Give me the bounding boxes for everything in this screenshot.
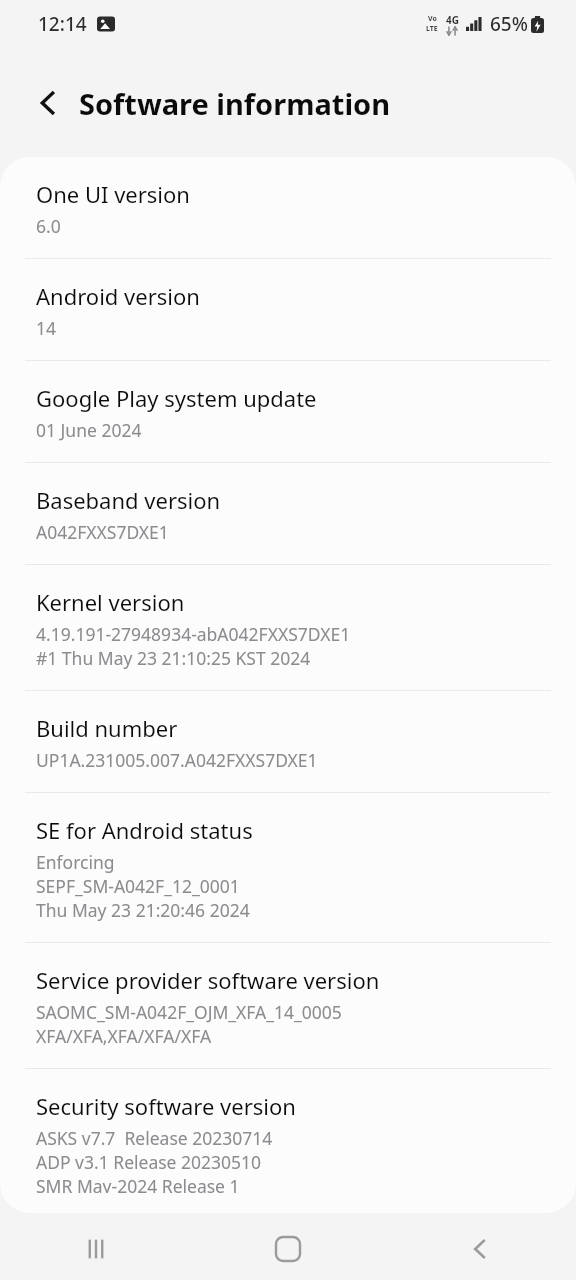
staticText: 14: [36, 316, 57, 340]
staticText: Security software version: [36, 1091, 296, 1121]
button[interactable]: One UI version: [0, 157, 576, 258]
button[interactable]: Kernel version: [0, 565, 576, 690]
button[interactable]: Service provider software version: [0, 943, 576, 1068]
button[interactable]: Recent apps: [0, 1218, 192, 1280]
staticText: SMR May-2024 Release 1: [36, 1174, 240, 1193]
button[interactable]: Security software version: [0, 1069, 576, 1213]
staticText: LTE: [426, 24, 438, 34]
staticText: #1 Thu May 23 21:10:25 KST 2024: [36, 646, 311, 670]
staticText: Google Play system update: [36, 383, 317, 413]
staticText: XFA/XFA,XFA/XFA/XFA: [36, 1024, 212, 1048]
staticText: SE for Android status: [36, 815, 253, 845]
staticText: 01 June 2024: [36, 418, 142, 442]
button[interactable]: Back: [384, 1218, 576, 1280]
button[interactable]: SE for Android status: [0, 793, 576, 942]
staticText: Android version: [36, 281, 200, 311]
staticText: 65%: [490, 11, 528, 37]
staticText: SEPF_SM-A042F_12_0001: [36, 874, 240, 898]
staticText: ADP v3.1 Release 20230510: [36, 1150, 262, 1174]
staticText: 6.0: [36, 214, 61, 238]
staticText: One UI version: [36, 179, 190, 209]
staticText: Vo: [428, 14, 437, 24]
staticText: SAOMC_SM-A042F_OJM_XFA_14_0005: [36, 1000, 342, 1024]
staticText: A042FXXS7DXE1: [36, 520, 169, 544]
button[interactable]: Build number: [0, 691, 576, 792]
staticText: Baseband version: [36, 485, 221, 515]
button[interactable]: Home: [192, 1218, 384, 1280]
staticText: 4G: [446, 13, 459, 27]
staticText: UP1A.231005.007.A042FXXS7DXE1: [36, 748, 318, 772]
staticText: Software information: [79, 84, 391, 123]
staticText: Kernel version: [36, 587, 185, 617]
staticText: Enforcing: [36, 850, 115, 874]
staticText: Service provider software version: [36, 965, 380, 995]
button[interactable]: Back: [20, 75, 76, 131]
staticText: ASKS v7.7 Release 20230714: [36, 1126, 273, 1150]
button[interactable]: Google Play system update: [0, 361, 576, 462]
button[interactable]: Android version: [0, 259, 576, 360]
staticText: 12:14: [38, 11, 87, 37]
button[interactable]: Baseband version: [0, 463, 576, 564]
staticText: Thu May 23 21:20:46 2024: [36, 898, 250, 922]
staticText: 4.19.191-27948934-abA042FXXS7DXE1: [36, 622, 351, 646]
staticText: Build number: [36, 713, 178, 743]
